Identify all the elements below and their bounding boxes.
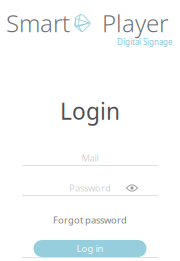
staticText: Digital Signage	[117, 37, 173, 47]
staticText: Login	[60, 96, 120, 126]
staticText: Mail	[81, 152, 98, 164]
button[interactable]: Show password	[120, 180, 144, 196]
staticText: Forgot password	[53, 214, 127, 226]
staticText: Log in	[76, 242, 103, 255]
staticText: Smart	[6, 7, 70, 39]
button[interactable]: Log in	[33, 240, 146, 257]
button[interactable]: Forgot password	[45, 213, 135, 227]
staticText: Password	[69, 182, 111, 194]
staticText: Player	[102, 7, 168, 39]
